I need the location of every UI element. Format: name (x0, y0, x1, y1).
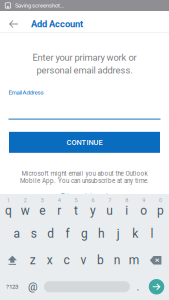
staticText: Saving screenshot… (15, 2, 64, 9)
button[interactable]: Send (144, 273, 169, 300)
staticText: r (57, 203, 61, 218)
button[interactable]: x (41, 247, 58, 273)
staticText: 9 (142, 197, 145, 203)
staticText: Mobile App. You can unsubscribe at any t… (20, 177, 149, 184)
button[interactable]: 1 (0, 194, 17, 220)
staticText: u (106, 203, 113, 218)
button[interactable]: @ (24, 273, 42, 300)
staticText: z (30, 253, 36, 267)
button[interactable]: z (24, 247, 41, 273)
staticText: Add Account (31, 18, 83, 29)
staticText: s (31, 227, 37, 241)
button[interactable]: m (126, 247, 143, 273)
staticText: j (117, 227, 120, 241)
button[interactable]: 2 (17, 194, 34, 220)
staticText: f (66, 227, 70, 241)
staticText: m (129, 253, 140, 267)
staticText: 7 (108, 197, 111, 203)
staticText: 1 (7, 197, 10, 203)
button[interactable]: b (92, 247, 109, 273)
staticText: 2 (24, 197, 27, 203)
button[interactable]: 8 (118, 194, 135, 220)
staticText: CONTINUE (66, 138, 102, 147)
button[interactable]: f (59, 220, 76, 247)
staticText: ?123 (6, 283, 18, 290)
button[interactable]: CONTINUE (9, 132, 160, 153)
button[interactable]: Backspace (143, 247, 169, 273)
staticText: 3 (41, 197, 44, 203)
staticText: Email Address (8, 89, 43, 96)
staticText: p (157, 203, 164, 218)
button[interactable]: d (42, 220, 59, 247)
staticText: o (140, 203, 147, 218)
button[interactable]: v (75, 247, 92, 273)
staticText: 8 (125, 197, 128, 203)
staticText: personal email address. (36, 65, 132, 76)
button[interactable]: Privacy statement (61, 191, 108, 199)
button[interactable]: s (25, 220, 42, 247)
button[interactable]: h (93, 220, 110, 247)
staticText: b (97, 253, 104, 267)
staticText: 6 (91, 197, 94, 203)
button[interactable]: j (110, 220, 127, 247)
button[interactable]: 5 (68, 194, 84, 220)
staticText: a (13, 227, 20, 241)
button[interactable]: k (127, 220, 144, 247)
staticText: Enter your primary work or (32, 52, 136, 63)
button[interactable]: a (8, 220, 25, 247)
staticText: . (136, 280, 139, 293)
button[interactable]: Back (0, 11, 27, 37)
button[interactable]: n (109, 247, 126, 273)
button[interactable]: . (132, 273, 144, 300)
staticText: h (98, 227, 105, 241)
staticText: i (125, 203, 128, 218)
button[interactable]: 4 (51, 194, 68, 220)
staticText: 5 (74, 197, 77, 203)
staticText: c (64, 253, 70, 267)
staticText: l (151, 227, 154, 241)
button[interactable]: 0 (152, 194, 169, 220)
staticText: Microsoft might email you about the Outl… (21, 170, 147, 177)
staticText: t (74, 203, 78, 218)
staticText: 4 (58, 197, 61, 203)
button[interactable]: c (58, 247, 75, 273)
button[interactable]: g (76, 220, 93, 247)
button[interactable]: l (144, 220, 161, 247)
staticText: n (114, 253, 121, 267)
button[interactable]: 7 (101, 194, 118, 220)
staticText: q (5, 203, 12, 218)
button[interactable]: Space (42, 273, 132, 300)
staticText: y (90, 203, 96, 218)
staticText: Privacy statement (61, 191, 108, 199)
button[interactable]: Shift (0, 247, 24, 273)
button[interactable]: 3 (34, 194, 51, 220)
button[interactable]: 9 (135, 194, 152, 220)
staticText: 0 (159, 197, 162, 203)
staticText: d (47, 227, 54, 241)
staticText: x (47, 253, 53, 267)
staticText: e (39, 203, 45, 218)
staticText: g (81, 227, 88, 241)
staticText: @ (28, 280, 38, 293)
staticText: v (80, 253, 86, 267)
staticText: w (21, 203, 30, 218)
button[interactable]: ?123 (0, 273, 24, 300)
staticText: k (132, 227, 138, 241)
button[interactable]: 6 (84, 194, 101, 220)
